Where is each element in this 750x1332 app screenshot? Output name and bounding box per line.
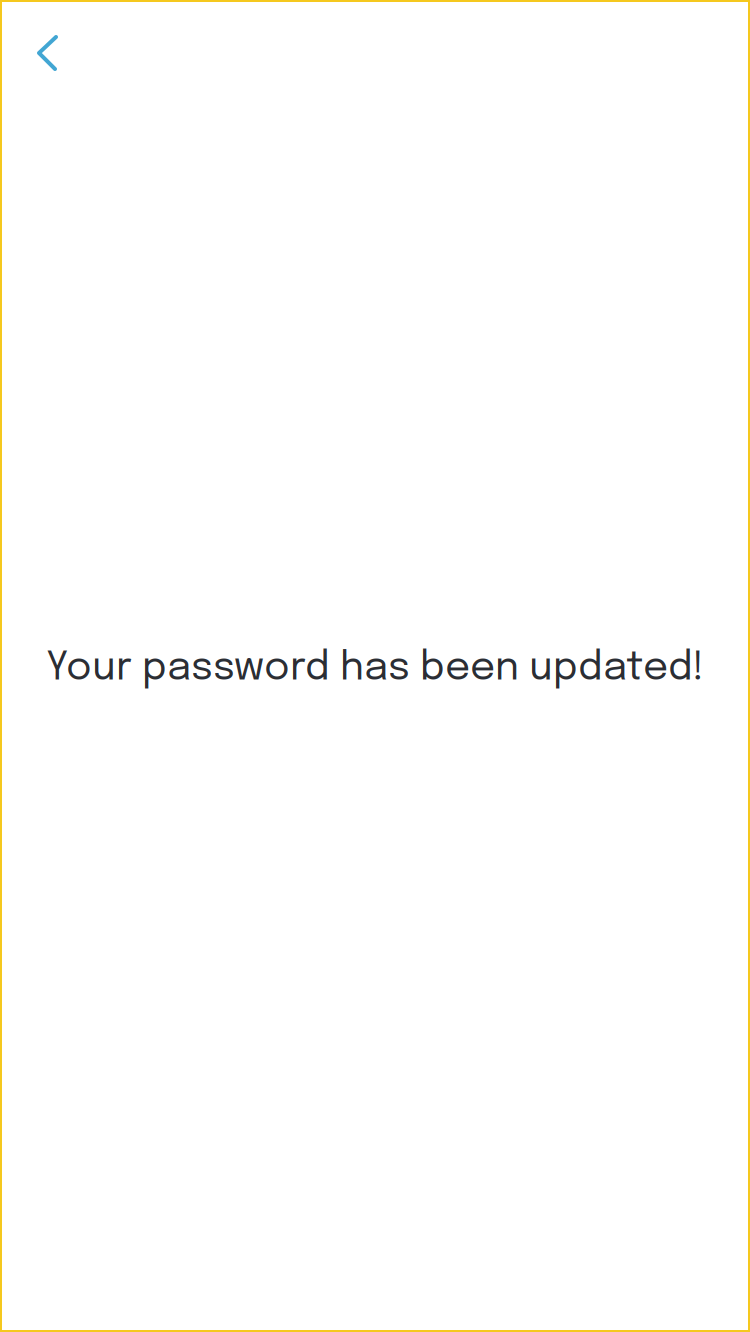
staticText: Your password has been updated! xyxy=(46,648,704,689)
button[interactable]: Back xyxy=(25,31,69,75)
